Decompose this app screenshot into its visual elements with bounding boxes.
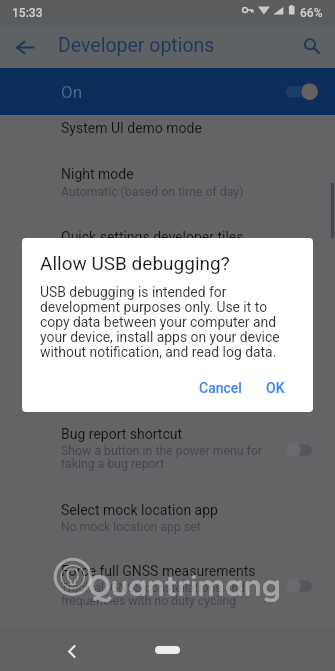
staticText: Cancel — [199, 380, 242, 396]
staticText: frequencies with no duty cycling — [61, 594, 237, 608]
staticText: Developer options — [58, 34, 215, 57]
button[interactable]: Cancel — [188, 372, 252, 404]
staticText: Quick settings developer tiles — [61, 229, 244, 245]
button[interactable] — [0, 494, 335, 540]
button[interactable]: Search — [295, 29, 329, 63]
button[interactable] — [0, 159, 335, 207]
button[interactable] — [0, 115, 335, 157]
staticText: Select mock location app — [61, 502, 218, 518]
button[interactable]: On — [0, 68, 335, 115]
staticText: On — [61, 82, 83, 102]
staticText: Night mode — [61, 166, 134, 182]
button[interactable]: OK — [254, 372, 296, 404]
staticText: 15:33 — [12, 6, 43, 20]
staticText: Track all GNSS constellations and — [61, 581, 246, 595]
staticText: Allow USB debugging? — [40, 252, 230, 274]
button[interactable] — [0, 556, 335, 614]
staticText: Show a button in the power menu for — [61, 444, 263, 458]
staticText: Automatic (based on time of day) — [61, 185, 244, 199]
staticText: USB debugging is intended for developmen… — [40, 284, 292, 360]
staticText: Quantrimang — [88, 566, 281, 604]
staticText: 66% — [300, 6, 323, 20]
button[interactable] — [0, 220, 335, 256]
button[interactable]: Back — [7, 29, 43, 65]
button[interactable]: Home — [155, 646, 180, 654]
staticText: System UI demo mode — [61, 120, 202, 136]
button[interactable] — [0, 418, 335, 476]
staticText: Bug report shortcut — [61, 426, 183, 442]
button[interactable]: Back — [59, 637, 87, 665]
staticText: Force full GNSS measurements — [61, 563, 256, 579]
staticText: taking a bug report — [61, 457, 165, 471]
staticText: No mock location app set — [61, 520, 201, 534]
staticText: OK — [266, 380, 285, 396]
